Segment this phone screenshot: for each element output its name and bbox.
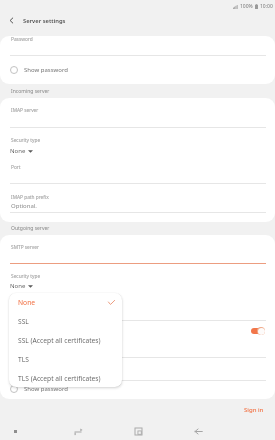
button[interactable]: Hide keyboard xyxy=(70,423,86,439)
staticText: SMTP server xyxy=(11,244,39,251)
button[interactable]: None xyxy=(8,279,35,293)
button[interactable]: Back xyxy=(190,423,206,439)
staticText: None xyxy=(18,298,36,307)
staticText: 10:00 xyxy=(260,3,273,10)
staticText: None xyxy=(10,147,26,155)
button[interactable]: SSL (Accept all certificates) xyxy=(9,331,122,350)
button[interactable]: Recent apps xyxy=(130,423,146,439)
staticText: Security type xyxy=(11,137,41,144)
button[interactable]: TLS xyxy=(9,350,122,369)
button[interactable]: Navigate up xyxy=(4,13,19,28)
staticText: Port xyxy=(11,164,21,171)
staticText: Server settings xyxy=(23,17,66,25)
staticText: TLS (Accept all certificates) xyxy=(18,374,101,383)
staticText: SSL (Accept all certificates) xyxy=(18,336,101,345)
staticText: Optional. xyxy=(11,202,37,210)
staticText: Outgoing server xyxy=(11,225,50,232)
button[interactable]: TLS (Accept all certificates) xyxy=(9,369,122,387)
staticText: Security type xyxy=(11,273,41,280)
staticText: Show password xyxy=(24,385,68,393)
staticText: Incoming server xyxy=(11,88,50,95)
button[interactable]: Show password xyxy=(0,380,275,398)
staticText: Password xyxy=(11,36,33,43)
button[interactable]: None xyxy=(9,293,122,312)
button[interactable]: None xyxy=(8,144,35,158)
button[interactable]: Show password xyxy=(0,61,275,79)
staticText: TLS xyxy=(18,355,29,364)
staticText: IMAP server xyxy=(11,107,39,114)
staticText: Show password xyxy=(24,66,68,74)
staticText: 100% xyxy=(240,3,253,10)
button[interactable]: Use authentication to sign in xyxy=(246,323,270,339)
staticText: Sign in xyxy=(244,406,264,414)
staticText: None xyxy=(10,282,26,290)
staticText: SSL xyxy=(18,317,29,326)
button[interactable]: SSL xyxy=(9,312,122,331)
button[interactable]: Show menu xyxy=(7,423,23,439)
staticText: IMAP path prefix xyxy=(11,194,49,201)
